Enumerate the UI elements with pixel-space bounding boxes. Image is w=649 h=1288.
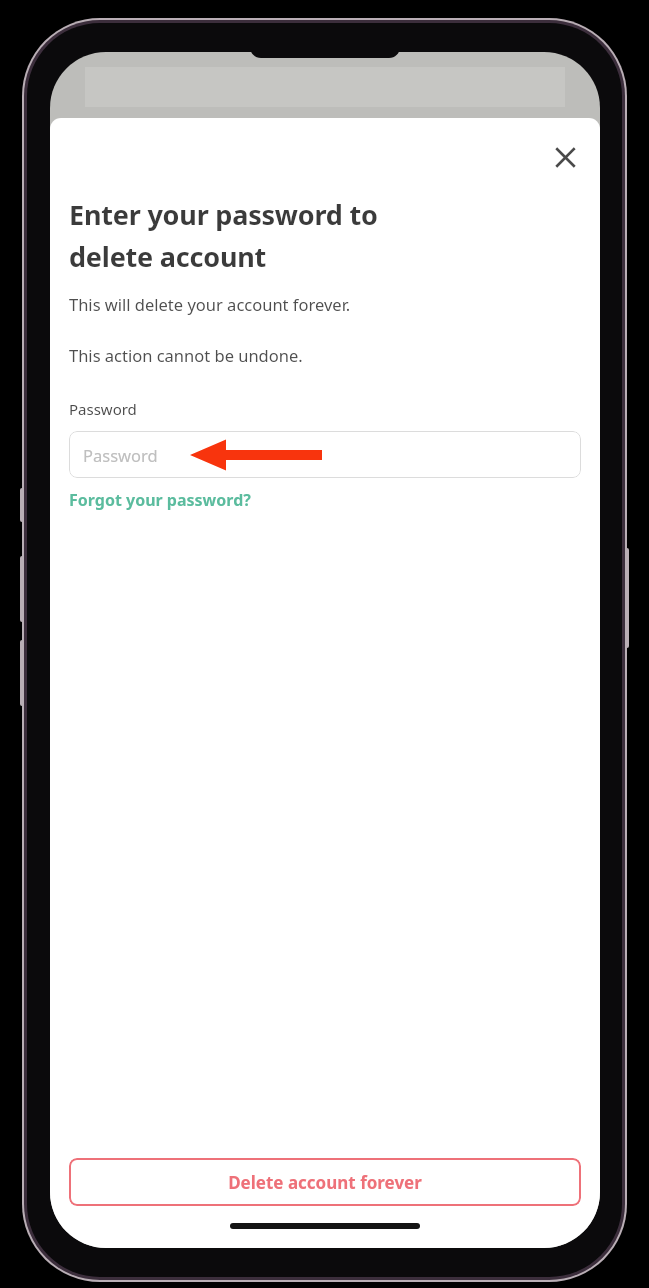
staticText: This will delete your account forever. bbox=[69, 293, 351, 315]
staticText: Password bbox=[69, 399, 137, 419]
button[interactable]: Close bbox=[541, 133, 589, 181]
staticText: Password bbox=[83, 444, 158, 466]
button[interactable]: Forgot your password? bbox=[69, 489, 251, 511]
staticText: Enter your password to delete account bbox=[69, 196, 378, 275]
button[interactable]: Password bbox=[69, 431, 581, 478]
staticText: This action cannot be undone. bbox=[69, 344, 303, 366]
staticText: Delete account forever bbox=[228, 1171, 422, 1194]
button[interactable]: Delete account forever bbox=[69, 1158, 581, 1206]
staticText: Forgot your password? bbox=[69, 489, 251, 511]
